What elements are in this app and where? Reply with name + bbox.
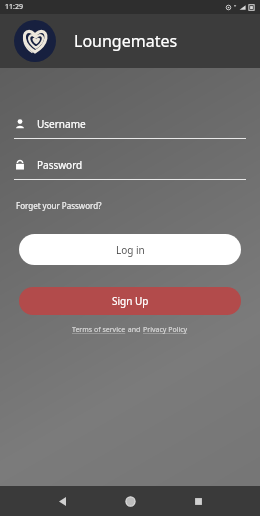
button[interactable]: Password (14, 158, 246, 180)
staticText: Privacy Policy (143, 325, 188, 335)
staticText: Terms of service (72, 325, 126, 335)
staticText: 11:29 (5, 2, 23, 12)
button[interactable]: Forget your Password? (14, 198, 104, 213)
staticText: and (126, 325, 143, 335)
button[interactable]: Username (14, 117, 246, 139)
button[interactable]: Log in (19, 234, 241, 265)
button[interactable]: Terms of service (72, 325, 126, 335)
staticText: Loungemates (74, 30, 178, 52)
staticText: Password (37, 158, 83, 172)
button[interactable]: Privacy Policy (143, 325, 188, 335)
staticText: Forget your Password? (16, 200, 102, 211)
staticText: Username (37, 117, 86, 131)
staticText: Log in (116, 243, 145, 257)
button[interactable]: Sign Up (19, 287, 241, 315)
button[interactable]: Back (28, 486, 96, 516)
staticText: " (234, 3, 237, 11)
button[interactable]: Home (96, 486, 164, 516)
staticText: Sign Up (112, 294, 149, 308)
button[interactable]: Recent apps (164, 486, 232, 516)
